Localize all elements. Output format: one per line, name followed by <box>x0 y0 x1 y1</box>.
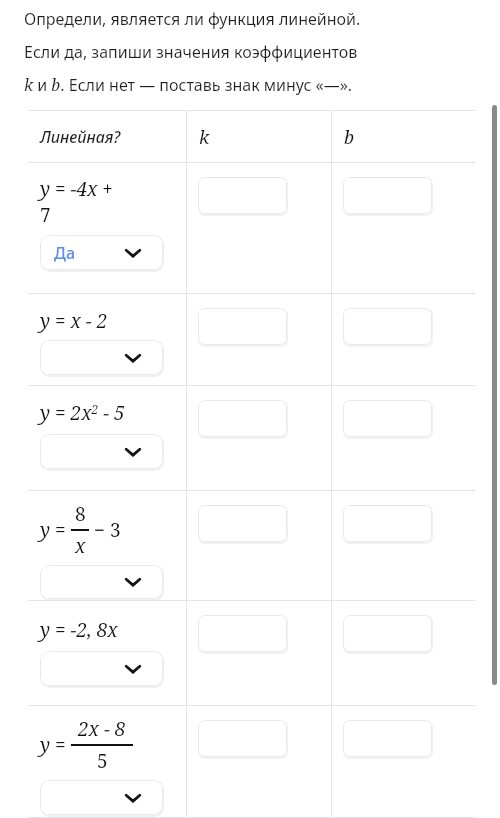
button[interactable] <box>343 400 432 437</box>
staticText: 8 <box>75 501 86 527</box>
button[interactable]: Выбрать ответ <box>40 651 163 686</box>
button[interactable] <box>198 308 287 345</box>
staticText: y = x − 2 <box>40 308 108 334</box>
button[interactable] <box>198 615 287 652</box>
button[interactable] <box>198 720 287 757</box>
button[interactable]: Выбрать ответ <box>40 565 163 599</box>
button[interactable] <box>343 308 432 345</box>
staticText: Определи, является ли функция линейной. <box>24 8 361 30</box>
staticText: y = −4x + <box>40 176 113 202</box>
staticText: 7 <box>40 202 51 228</box>
staticText: y = <box>40 517 71 543</box>
button[interactable]: Выбрать ответ <box>40 235 163 270</box>
button[interactable] <box>198 400 287 437</box>
button[interactable] <box>343 177 432 214</box>
button[interactable] <box>343 720 432 757</box>
staticText: y = −2, 8x <box>40 617 118 643</box>
staticText: y = <box>40 732 71 758</box>
staticText: 5 <box>97 748 108 774</box>
button[interactable]: Выбрать ответ <box>40 434 163 469</box>
staticText: 2x − 8 <box>78 716 126 742</box>
staticText: x <box>75 533 86 559</box>
staticText: − 3 <box>89 517 121 543</box>
button[interactable]: Выбрать ответ <box>40 780 163 815</box>
staticText: k и b. Если нет — поставь знак минус «—»… <box>24 74 353 96</box>
button[interactable]: Выбрать ответ <box>40 340 163 375</box>
staticText: Да <box>54 242 75 264</box>
staticText: b <box>344 125 355 150</box>
button[interactable] <box>198 505 287 542</box>
button[interactable] <box>343 505 432 542</box>
staticText: y = 2x2 − 5 <box>40 400 125 426</box>
staticText: k <box>199 125 210 150</box>
staticText: Если да, запиши значения коэффициентов <box>24 41 358 63</box>
staticText: Линейная? <box>40 126 121 148</box>
button[interactable] <box>198 177 287 214</box>
button[interactable] <box>343 615 432 652</box>
